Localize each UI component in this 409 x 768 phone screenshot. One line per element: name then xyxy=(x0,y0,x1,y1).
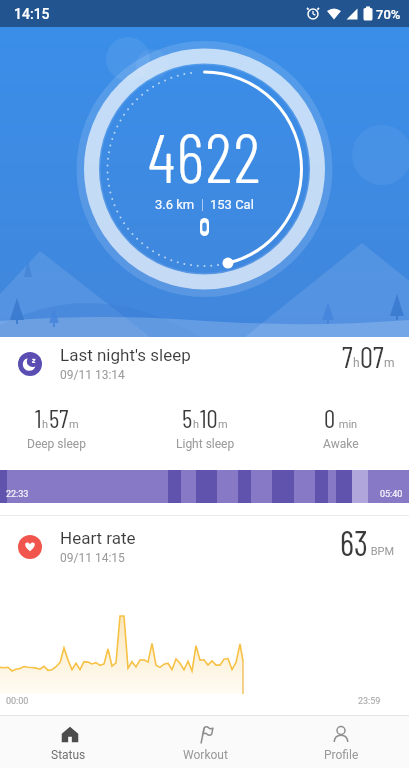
staticText: 3.6 km xyxy=(155,197,195,212)
staticText: 57 xyxy=(49,403,69,433)
staticText: m xyxy=(218,418,228,431)
staticText: 70% xyxy=(376,7,401,22)
staticText: Profile xyxy=(324,748,359,762)
staticText: 22:33 xyxy=(6,489,29,500)
staticText: 09/11 14:15 xyxy=(60,551,125,565)
staticText: m xyxy=(69,418,79,431)
staticText: m xyxy=(384,356,395,370)
button[interactable]: Workout xyxy=(137,716,273,768)
button[interactable]: 5 xyxy=(137,403,273,451)
button[interactable]: 4622 xyxy=(0,27,409,337)
button[interactable]: Last night's sleep xyxy=(18,345,395,382)
staticText: 7 xyxy=(342,339,353,374)
staticText: 09/11 13:14 xyxy=(60,368,125,382)
staticText: 10 xyxy=(200,403,218,433)
staticText: Deep sleep xyxy=(27,437,86,451)
button[interactable]: 0 xyxy=(273,403,409,451)
staticText: 153 Cal xyxy=(210,197,254,212)
button[interactable]: Status xyxy=(0,716,137,768)
staticText: Heart rate xyxy=(60,528,136,548)
staticText: 00:00 xyxy=(6,696,29,707)
staticText: 0 xyxy=(324,403,336,433)
staticText: Awake xyxy=(323,437,359,451)
staticText: Workout xyxy=(183,748,228,762)
staticText: 4622 xyxy=(148,115,262,197)
staticText: BPM xyxy=(368,545,395,558)
staticText: Light sleep xyxy=(176,437,235,451)
button[interactable]: 1 xyxy=(0,403,125,451)
staticText: min xyxy=(336,418,358,431)
button[interactable]: Profile xyxy=(273,716,409,768)
staticText: 23:59 xyxy=(358,696,381,707)
staticText: Last night's sleep xyxy=(60,345,191,365)
staticText: 05:40 xyxy=(380,489,403,500)
staticText: h xyxy=(193,418,200,431)
button[interactable]: 22:33 xyxy=(0,470,409,503)
staticText: 5 xyxy=(182,403,193,433)
staticText: Status xyxy=(51,748,86,762)
button[interactable]: Heart rate xyxy=(18,526,395,567)
staticText: 63 xyxy=(340,522,368,563)
staticText: 07 xyxy=(360,339,384,374)
staticText: h xyxy=(353,356,360,370)
staticText: 14:15 xyxy=(14,6,50,22)
staticText: h xyxy=(42,418,49,431)
staticText: 1 xyxy=(35,403,42,433)
